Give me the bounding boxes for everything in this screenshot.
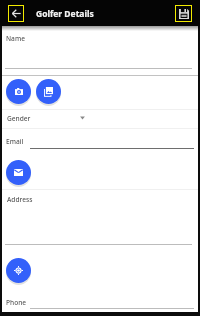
button[interactable]: Choose from gallery — [36, 79, 61, 104]
button[interactable]: Gender — [2, 110, 198, 128]
staticText: Phone — [6, 298, 27, 307]
button[interactable]: Take photo — [6, 79, 31, 104]
staticText: Name — [6, 34, 25, 43]
staticText: Address — [7, 195, 33, 204]
staticText: Email — [6, 137, 24, 146]
staticText: Golfer Details — [36, 8, 94, 20]
staticText: Gender — [7, 114, 31, 123]
button[interactable]: Use current location — [6, 258, 31, 283]
button[interactable]: Send email — [6, 160, 31, 185]
button[interactable]: Back — [8, 5, 24, 22]
button[interactable]: Save — [175, 5, 192, 22]
